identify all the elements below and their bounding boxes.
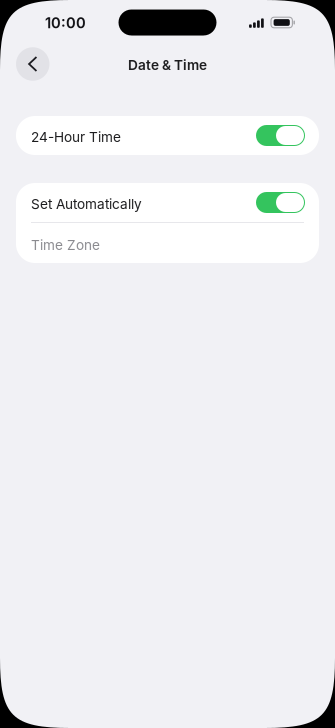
button[interactable]: 24-Hour Time xyxy=(16,116,319,155)
staticText: Date & Time xyxy=(128,57,207,73)
staticText: Time Zone xyxy=(31,237,100,253)
button[interactable]: Set Automatically xyxy=(16,183,319,222)
staticText: 10:00 xyxy=(45,14,86,32)
staticText: 24-Hour Time xyxy=(31,129,121,145)
button[interactable]: Back xyxy=(16,47,49,81)
staticText: Set Automatically xyxy=(31,196,142,212)
button[interactable]: Time Zone xyxy=(16,223,319,263)
